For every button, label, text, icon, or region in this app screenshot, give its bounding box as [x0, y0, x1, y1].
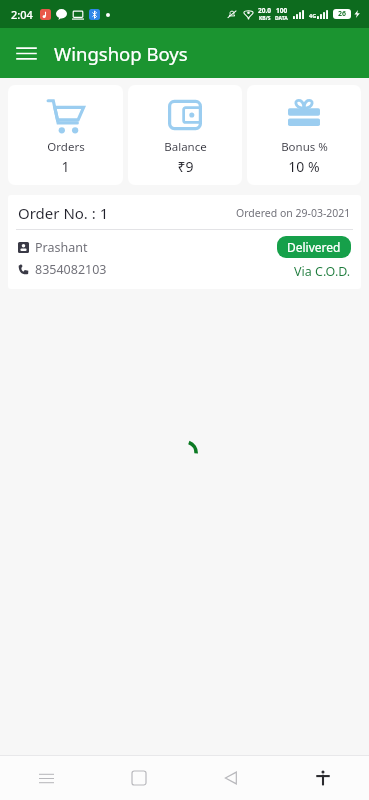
button[interactable]: Bonus	[247, 85, 361, 185]
button[interactable]: Delivered	[277, 236, 351, 258]
staticText: ₹9	[177, 157, 194, 176]
button[interactable]: Recent apps	[0, 756, 93, 800]
staticText: Bonus %	[281, 139, 328, 155]
staticText: 1	[61, 157, 70, 176]
staticText: KB/S	[259, 15, 271, 22]
staticText: Order No. : 1	[18, 203, 109, 223]
button[interactable]: Home	[93, 756, 185, 800]
staticText: Wingshop Boys	[54, 41, 188, 66]
staticText: Orders	[47, 139, 85, 155]
staticText: 8354082103	[35, 261, 107, 278]
staticText: 26	[338, 9, 347, 19]
staticText: Prashant	[35, 239, 88, 256]
button[interactable]: Orders	[8, 85, 123, 185]
staticText: DATA	[275, 15, 288, 22]
staticText: Ordered on 29-03-2021	[236, 206, 351, 220]
staticText: 100	[276, 6, 288, 15]
staticText: Balance	[164, 139, 207, 155]
button[interactable]: Order No. : 1	[8, 195, 361, 289]
button[interactable]: Open navigation menu	[6, 33, 46, 73]
button[interactable]: Accessibility menu	[277, 756, 369, 800]
staticText: 2:04	[11, 7, 33, 22]
staticText: 20.0	[258, 6, 271, 15]
staticText: 10 %	[288, 157, 320, 176]
staticText: Via C.O.D.	[294, 263, 351, 280]
button[interactable]: Balance	[128, 85, 242, 185]
staticText: 4G	[309, 12, 317, 19]
button[interactable]: Back	[185, 756, 277, 800]
staticText: Delivered	[287, 239, 341, 255]
